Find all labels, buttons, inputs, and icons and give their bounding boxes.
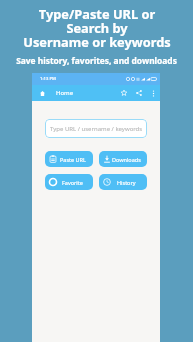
button[interactable]: Type URL / username / keywords [45, 119, 147, 138]
button[interactable]: Paste URL [45, 151, 93, 167]
staticText: Paste URL [60, 156, 86, 163]
staticText: Home [56, 89, 74, 97]
staticText: 1:13 PM [40, 76, 56, 82]
staticText: History [117, 179, 136, 186]
button[interactable]: Share [133, 87, 145, 99]
staticText: Type/Paste URL or Search by Username or … [23, 5, 171, 51]
staticText: Type URL / username / keywords [50, 125, 143, 133]
button[interactable]: Home [36, 87, 48, 99]
button[interactable]: More options [147, 87, 159, 99]
button[interactable]: History [99, 174, 147, 190]
button[interactable]: Favorite [45, 174, 93, 190]
staticText: Downloads [112, 156, 141, 163]
staticText: Favorite [62, 179, 83, 186]
button[interactable]: Downloads [99, 151, 147, 167]
staticText: Save history, favorites, and downloads [16, 55, 177, 66]
button[interactable]: Favorite [118, 87, 130, 99]
